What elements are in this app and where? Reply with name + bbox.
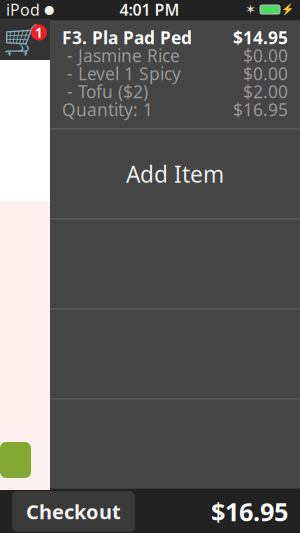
staticText: Add Item xyxy=(126,159,224,189)
staticText: $16.95 xyxy=(233,98,288,121)
staticText: $0.00 xyxy=(243,44,288,67)
staticText: $14.95 xyxy=(233,26,288,49)
staticText: Checkout xyxy=(26,498,121,525)
staticText: $16.95 xyxy=(211,495,288,528)
staticText: $0.00 xyxy=(243,62,288,85)
staticText: 🛒 xyxy=(2,23,39,56)
staticText: - Level 1 Spicy xyxy=(62,62,181,85)
staticText: iPod xyxy=(6,0,40,20)
staticText: 4:01 PM xyxy=(119,0,179,20)
staticText: ● xyxy=(44,3,54,16)
staticText: Quantity: 1 xyxy=(62,98,153,121)
button[interactable]: F3. Pla Pad Ped xyxy=(50,20,300,128)
staticText: 1 xyxy=(35,24,43,41)
button[interactable]: Add Item xyxy=(50,129,300,218)
staticText: $2.00 xyxy=(243,80,288,103)
staticText: ✶ xyxy=(245,2,256,17)
button[interactable]: Checkout xyxy=(12,491,135,532)
staticText: - Tofu ($2) xyxy=(62,80,148,103)
staticText: F3. Pla Pad Ped xyxy=(62,26,192,49)
staticText: - Jasmine Rice xyxy=(62,44,180,67)
button[interactable]: Cart, 1 item xyxy=(0,19,50,60)
staticText: ⚡ xyxy=(281,3,294,16)
